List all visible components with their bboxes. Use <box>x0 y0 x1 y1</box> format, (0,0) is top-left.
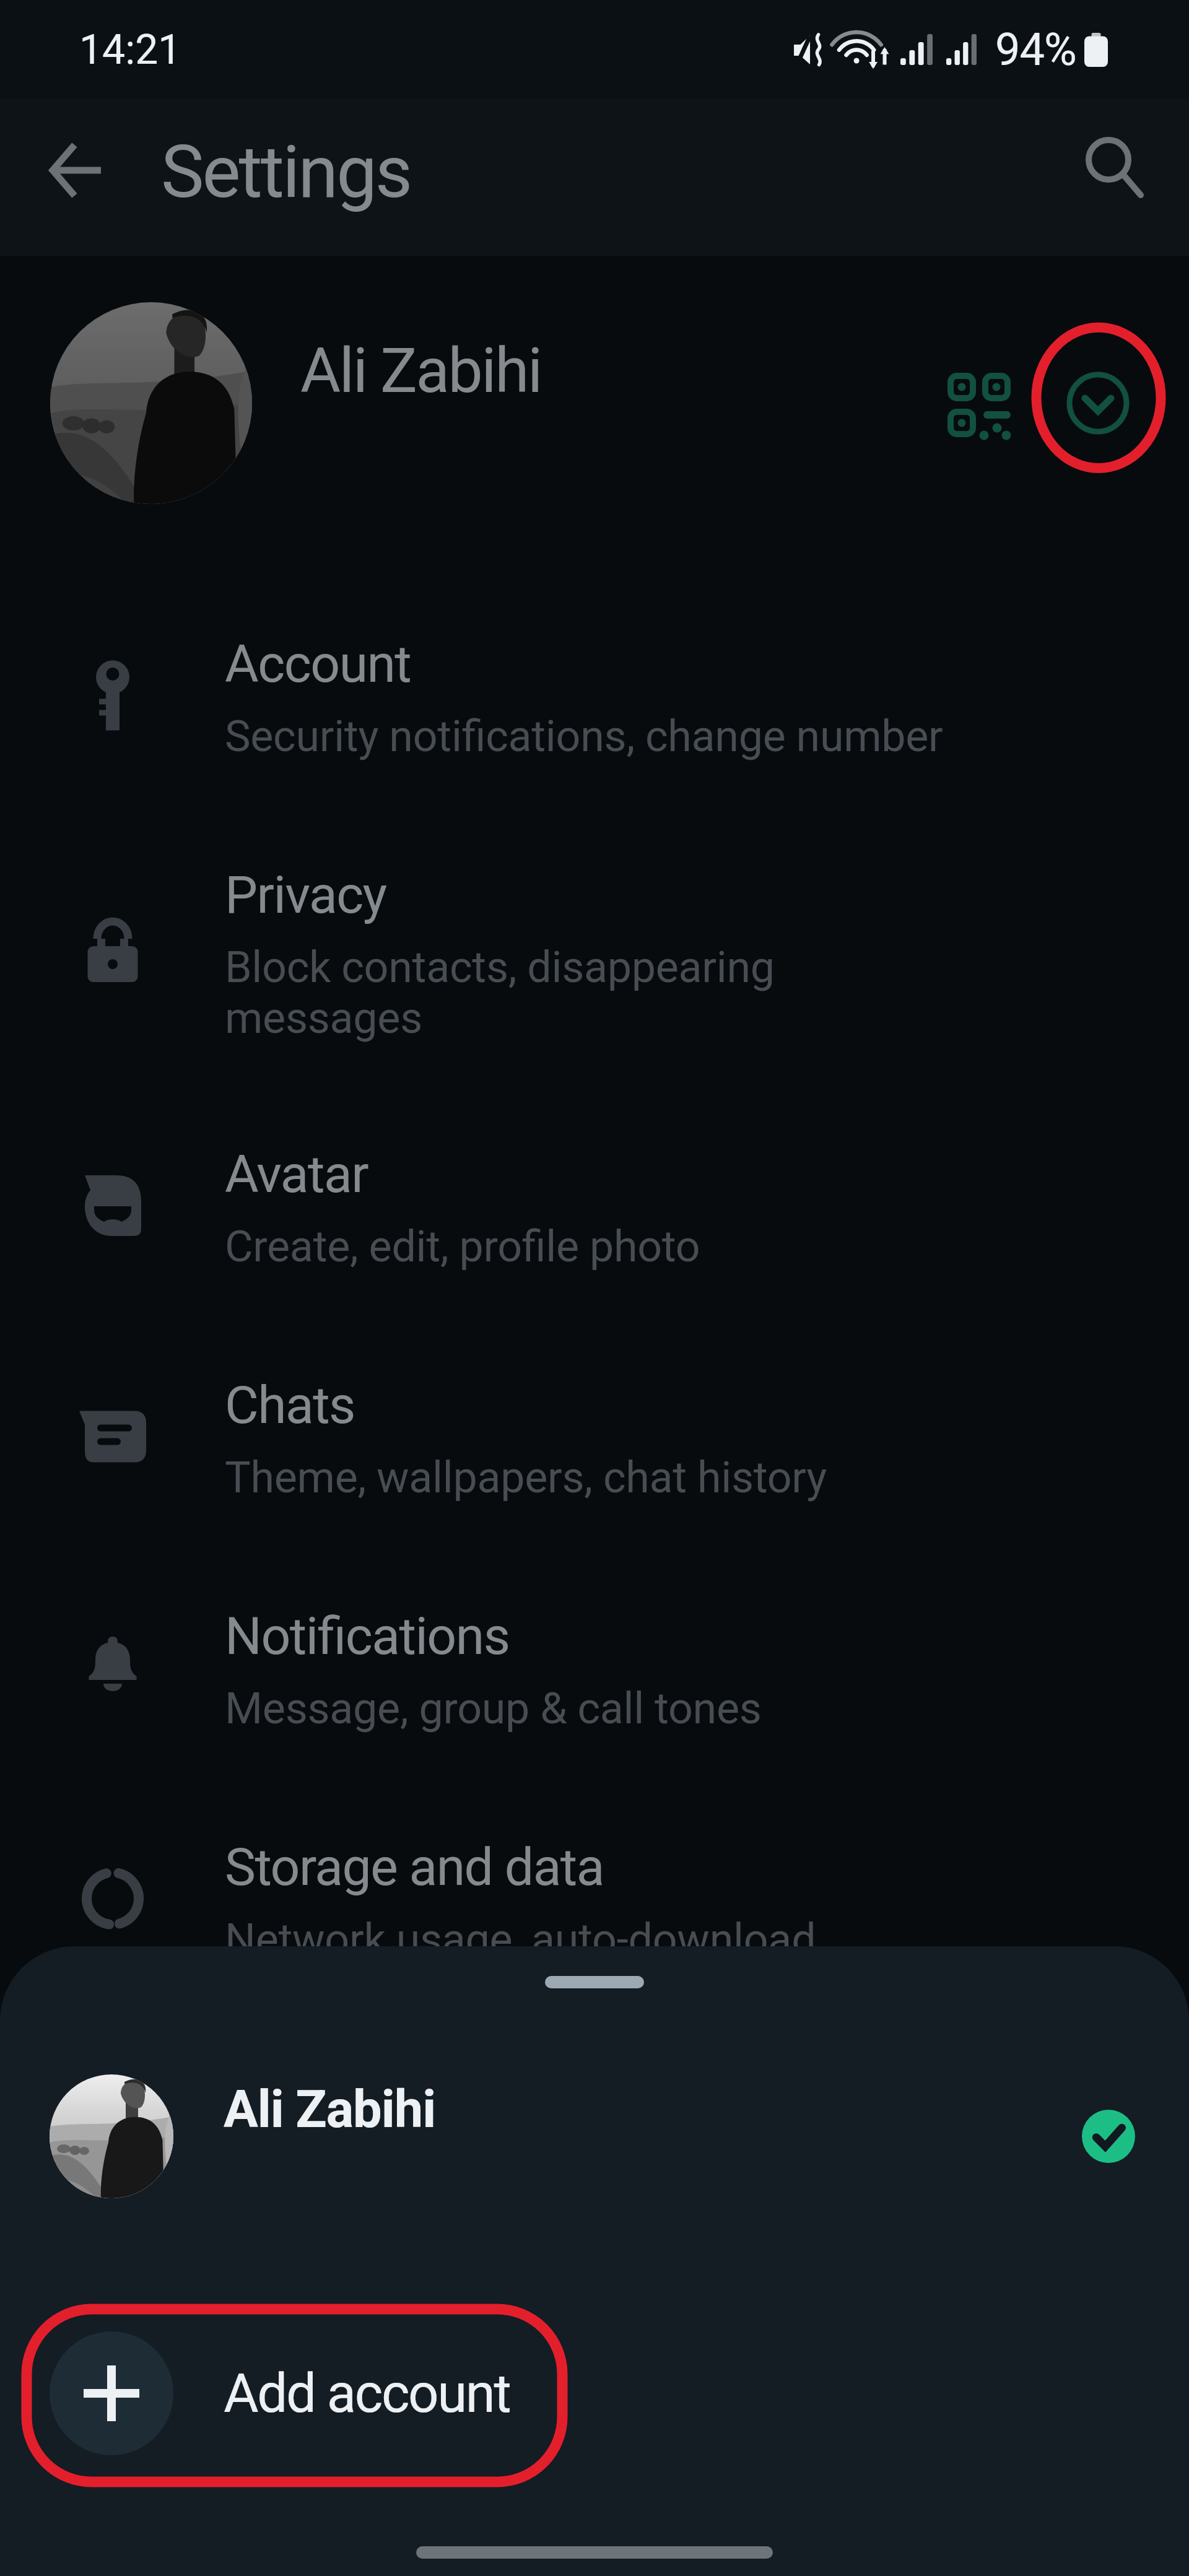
button[interactable]: Ali Zabihi <box>0 2062 1189 2211</box>
staticText: 94% <box>995 24 1076 76</box>
staticText: Message, group & call tones <box>225 1683 762 1734</box>
staticText: Ali Zabihi <box>300 334 541 407</box>
button[interactable]: Search <box>1073 127 1154 207</box>
staticText: Avatar <box>225 1144 368 1204</box>
staticText: Privacy <box>225 864 386 925</box>
staticText: Storage and data <box>225 1837 604 1897</box>
button[interactable]: Add account <box>0 2319 1189 2468</box>
button[interactable]: Chats <box>0 1318 1189 1549</box>
button[interactable]: Ali Zabihi <box>0 301 1189 505</box>
staticText: Account <box>225 633 411 694</box>
button[interactable]: Back <box>35 130 116 211</box>
staticText: Notifications <box>225 1606 510 1666</box>
staticText: Theme, wallpapers, chat history <box>225 1452 827 1503</box>
button[interactable]: Privacy <box>0 807 1189 1087</box>
button[interactable]: Notifications <box>0 1549 1189 1780</box>
staticText: Block contacts, disappearing messages <box>225 942 775 1043</box>
button[interactable]: QR code <box>936 361 1022 448</box>
staticText: Security notifications, change number <box>225 711 943 762</box>
staticText: Network usage, auto-download <box>225 1914 816 1965</box>
button[interactable]: Storage and data <box>0 1780 1189 2011</box>
staticText: Create, edit, profile photo <box>225 1221 700 1272</box>
staticText: 14:21 <box>79 26 181 74</box>
staticText: Add account <box>224 2362 510 2425</box>
button[interactable]: Switch account <box>1055 360 1141 446</box>
button[interactable]: Avatar <box>0 1087 1189 1318</box>
staticText: Settings <box>161 129 411 214</box>
staticText: Chats <box>225 1375 355 1435</box>
staticText: Ali Zabihi <box>224 2079 436 2139</box>
button[interactable]: Account <box>0 577 1189 807</box>
